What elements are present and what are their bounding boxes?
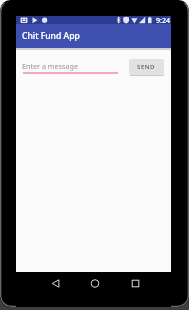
staticText: SEND	[137, 63, 156, 71]
staticText: Chit Fund App	[22, 30, 80, 42]
staticText: 9:24	[156, 16, 170, 24]
button[interactable]	[119, 272, 171, 307]
staticText: Enter a message	[22, 61, 78, 71]
button[interactable]	[67, 272, 119, 307]
button[interactable]: SEND	[129, 59, 164, 75]
button[interactable]	[16, 272, 67, 307]
